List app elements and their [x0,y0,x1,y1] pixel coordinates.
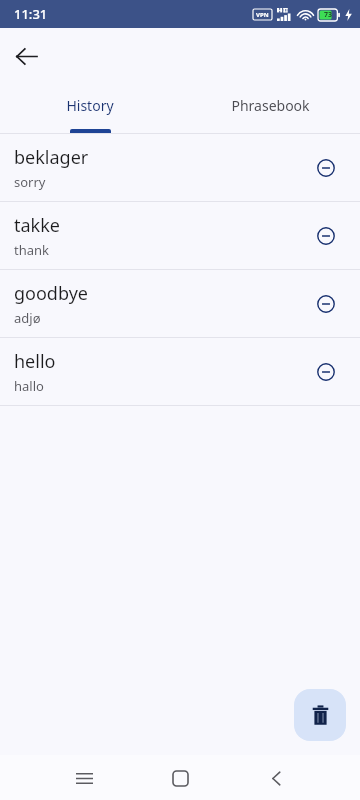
button[interactable]: Recent apps [62,756,106,800]
button[interactable]: Remove beklager [304,146,348,190]
staticText: beklager [14,145,89,170]
button[interactable]: beklager [0,134,360,201]
staticText: hello [14,349,56,374]
staticText: hallo [14,377,44,395]
staticText: adjø [14,309,41,327]
button[interactable]: Back [254,756,298,800]
button[interactable]: takke [0,202,360,269]
staticText: 73 [324,10,333,20]
staticText: VPN [256,11,269,19]
button[interactable]: Phrasebook [180,84,360,133]
button[interactable]: Back [6,36,46,76]
button[interactable]: goodbye [0,270,360,337]
staticText: Phrasebook [231,96,310,115]
button[interactable]: Delete all [294,689,346,741]
button[interactable]: Remove goodbye [304,282,348,326]
button[interactable]: hello [0,338,360,405]
staticText: thank [14,241,49,259]
staticText: 11:31 [14,5,48,23]
button[interactable]: History [0,84,180,133]
staticText: goodbye [14,281,88,306]
staticText: takke [14,213,60,238]
staticText: History [66,96,114,115]
staticText: sorry [14,173,46,191]
button[interactable]: Remove takke [304,214,348,258]
button[interactable]: Remove hello [304,350,348,394]
button[interactable]: Home [158,756,202,800]
